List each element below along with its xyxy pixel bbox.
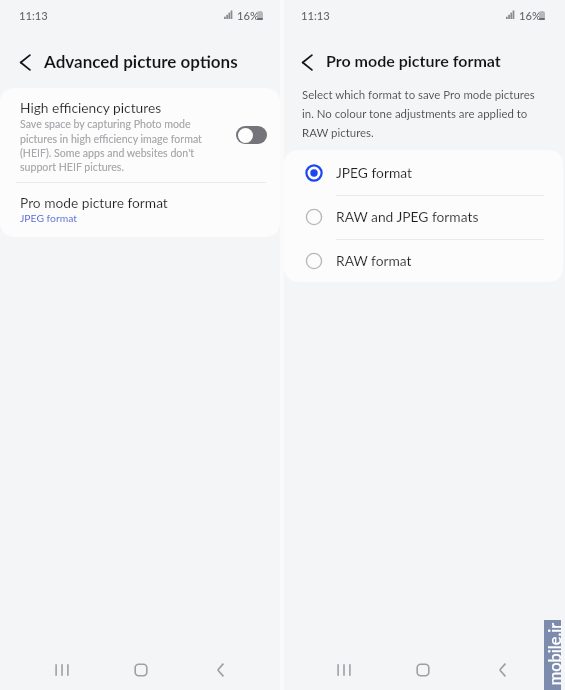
staticText: mobile.ir bbox=[544, 622, 561, 685]
button[interactable]: Back bbox=[478, 646, 526, 690]
button[interactable]: JPEG format bbox=[284, 151, 563, 195]
button[interactable]: RAW and JPEG formats bbox=[284, 195, 563, 239]
staticText: 11:13 bbox=[19, 9, 48, 22]
staticText: JPEG format bbox=[336, 164, 412, 181]
staticText: JPEG format bbox=[20, 212, 77, 224]
button[interactable] bbox=[0, 183, 280, 237]
staticText: Select which format to save Pro mode pic… bbox=[302, 88, 545, 140]
button[interactable]: Navigate up bbox=[288, 44, 325, 81]
button[interactable]: RAW format bbox=[284, 239, 563, 283]
staticText: 16% bbox=[237, 9, 259, 22]
button[interactable] bbox=[0, 89, 280, 182]
staticText: High efficiency pictures bbox=[20, 99, 162, 116]
button[interactable]: Home bbox=[117, 646, 165, 690]
button[interactable]: Recents bbox=[320, 646, 368, 690]
staticText: 16% bbox=[519, 9, 541, 22]
button[interactable]: Back bbox=[196, 646, 244, 690]
staticText: 11:13 bbox=[301, 9, 330, 22]
staticText: RAW format bbox=[336, 252, 412, 269]
staticText: Pro mode picture format bbox=[20, 194, 168, 211]
staticText: Advanced picture options bbox=[44, 51, 238, 71]
staticText: Save space by capturing Photo mode pictu… bbox=[20, 118, 210, 173]
button[interactable]: Navigate up bbox=[6, 44, 43, 81]
staticText: RAW and JPEG formats bbox=[336, 208, 479, 225]
button[interactable]: High efficiency pictures bbox=[230, 120, 272, 149]
button[interactable]: Recents bbox=[38, 646, 86, 690]
staticText: Pro mode picture format bbox=[326, 51, 501, 70]
button[interactable]: Home bbox=[399, 646, 447, 690]
